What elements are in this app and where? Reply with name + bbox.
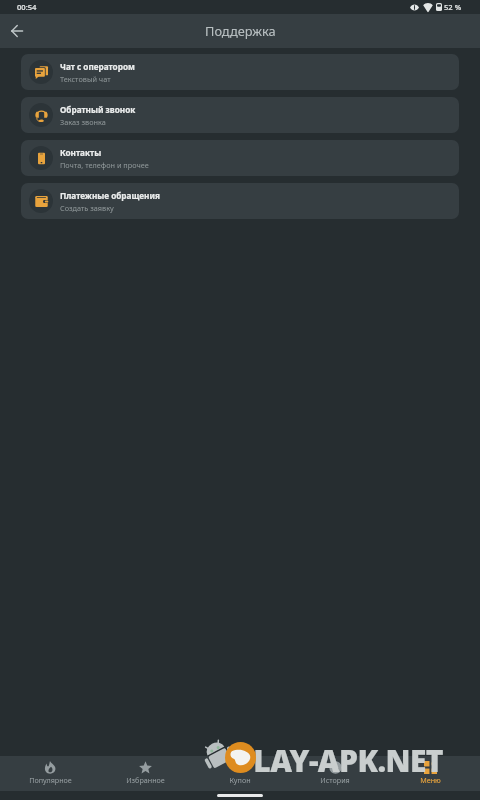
staticText: 00:54: [17, 2, 37, 12]
button[interactable]: Чат с оператором: [21, 54, 459, 90]
staticText: Популярное: [29, 775, 72, 785]
staticText: Избранное: [126, 775, 165, 785]
staticText: 52 %: [444, 2, 462, 12]
staticText: Заказ звонка: [60, 117, 106, 127]
staticText: Обратный звонок: [60, 104, 136, 115]
staticText: Создать заявку: [60, 203, 114, 213]
button[interactable]: Платежные обращения: [21, 183, 459, 219]
button[interactable]: Контакты: [21, 140, 459, 176]
button[interactable]: Избранное: [100, 756, 190, 785]
button[interactable]: Обратный звонок: [21, 97, 459, 133]
staticText: Контакты: [60, 147, 102, 158]
staticText: Почта, телефон и прочее: [60, 160, 149, 170]
staticText: Текстовый чат: [60, 74, 111, 84]
button[interactable]: Назад: [6, 20, 28, 42]
staticText: Поддержка: [205, 22, 276, 39]
button[interactable]: Купон: [195, 756, 285, 785]
staticText: PLAY-APK.NET: [235, 740, 443, 781]
staticText: Купон: [229, 775, 251, 785]
button[interactable]: История: [290, 756, 380, 785]
staticText: Меню: [420, 775, 441, 785]
button[interactable]: Популярное: [5, 756, 95, 785]
staticText: История: [320, 775, 350, 785]
staticText: Платежные обращения: [60, 190, 160, 201]
button[interactable]: Меню: [385, 756, 475, 785]
staticText: Чат с оператором: [60, 61, 135, 72]
